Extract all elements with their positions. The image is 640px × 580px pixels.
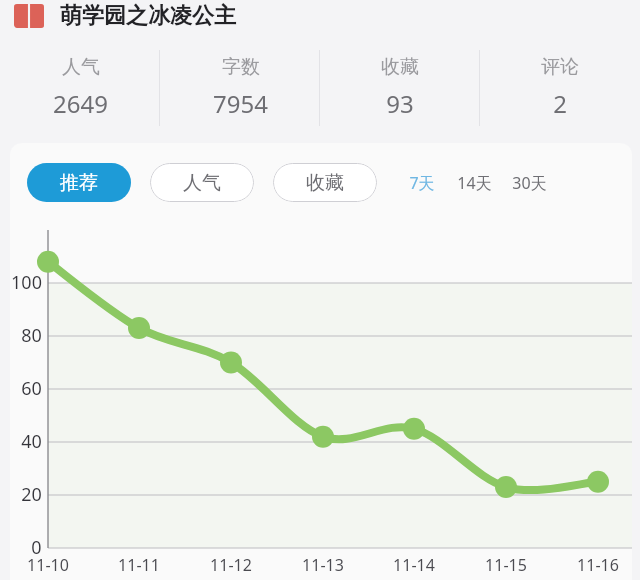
staticText: 2 xyxy=(553,87,567,120)
staticText: 7954 xyxy=(213,87,268,120)
staticText: 字数 xyxy=(222,55,260,79)
staticText: 收藏 xyxy=(381,55,419,79)
staticText: 11-14 xyxy=(393,554,435,576)
staticText: 20 xyxy=(21,482,42,507)
staticText: 评论 xyxy=(541,55,579,79)
button[interactable]: 7天 xyxy=(405,166,439,200)
staticText: 推荐 xyxy=(60,171,98,195)
staticText: 11-12 xyxy=(210,554,252,576)
button[interactable]: 推荐 xyxy=(27,163,131,202)
staticText: 30天 xyxy=(512,172,547,194)
staticText: 人气 xyxy=(62,55,100,79)
staticText: 100 xyxy=(11,270,42,295)
staticText: 7天 xyxy=(409,172,435,194)
button[interactable]: 30天 xyxy=(508,166,551,200)
staticText: 收藏 xyxy=(306,171,344,195)
staticText: 人气 xyxy=(183,171,221,195)
staticText: 11-10 xyxy=(27,554,69,576)
button[interactable]: 14天 xyxy=(453,166,496,200)
staticText: 11-16 xyxy=(577,554,619,576)
staticText: 80 xyxy=(21,323,42,348)
staticText: 11-11 xyxy=(118,554,160,576)
staticText: 2649 xyxy=(53,87,108,120)
staticText: 11-15 xyxy=(485,554,527,576)
staticText: 40 xyxy=(21,429,42,454)
other: Book xyxy=(14,4,44,28)
staticText: 萌学园之冰凌公主 xyxy=(60,2,236,30)
staticText: 14天 xyxy=(457,172,492,194)
button[interactable]: 人气 xyxy=(150,163,254,202)
button[interactable]: 收藏 xyxy=(273,163,377,202)
staticText: 93 xyxy=(386,87,414,120)
staticText: 0 xyxy=(31,535,42,560)
staticText: 60 xyxy=(21,376,42,401)
staticText: 11-13 xyxy=(302,554,344,576)
